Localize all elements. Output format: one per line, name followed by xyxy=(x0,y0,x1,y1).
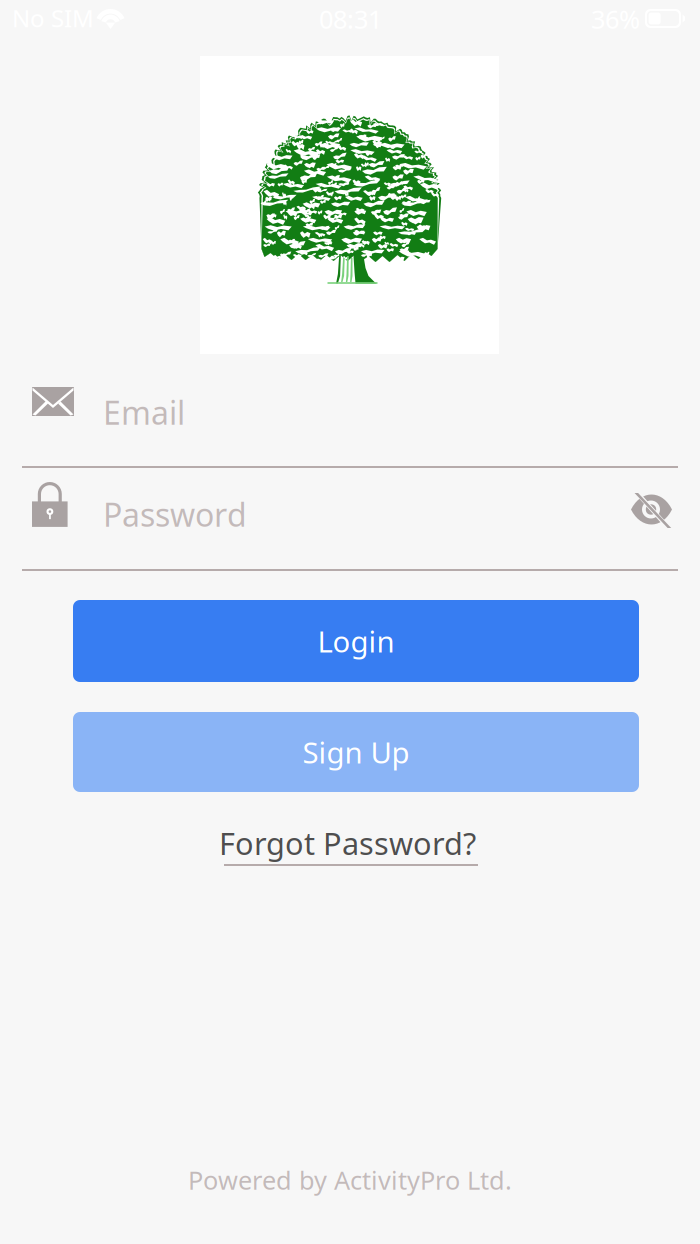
staticText: Sign Up xyxy=(302,732,409,771)
staticText: Forgot Password? xyxy=(219,823,476,863)
button[interactable]: Email xyxy=(0,354,700,466)
staticText: Login xyxy=(317,621,394,660)
button[interactable]: Sign Up xyxy=(73,712,639,792)
staticText: Password xyxy=(103,493,247,535)
staticText: Powered by ActivityPro Ltd. xyxy=(188,1163,512,1197)
button[interactable]: Login xyxy=(73,600,639,682)
button[interactable]: Password xyxy=(0,468,700,569)
button[interactable]: Forgot Password? xyxy=(222,829,522,875)
staticText: Email xyxy=(103,391,185,433)
